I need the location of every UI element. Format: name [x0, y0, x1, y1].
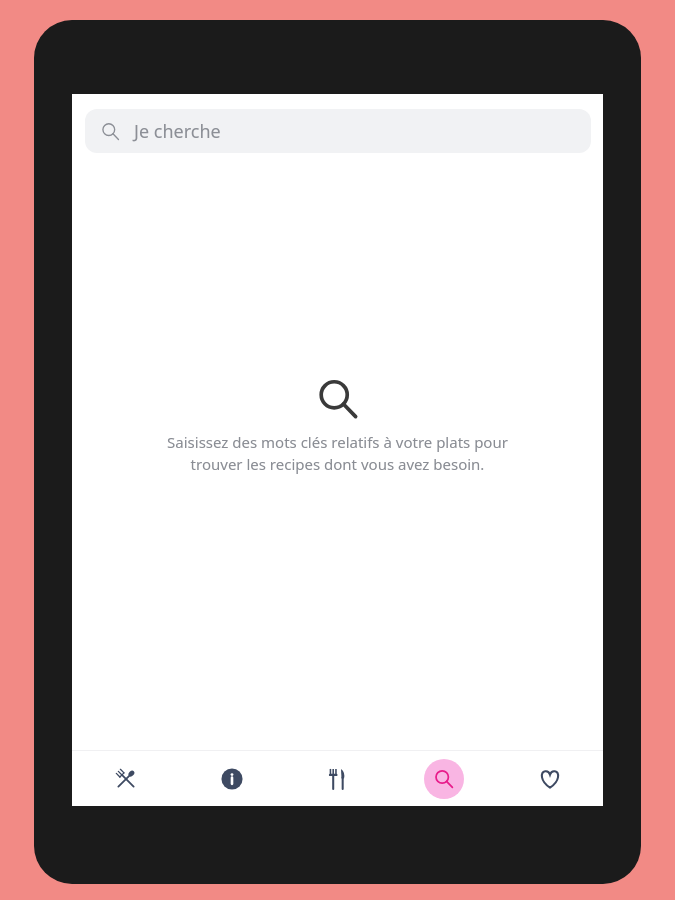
button[interactable]: Meals [285, 751, 391, 806]
button[interactable]: Information [179, 751, 285, 806]
button[interactable]: Je cherche [85, 109, 591, 153]
staticText: Je cherche [134, 119, 221, 144]
button[interactable]: Recipes [72, 751, 179, 806]
button[interactable]: Favorites [497, 751, 603, 806]
staticText: Saisissez des mots clés relatifs à votre… [88, 432, 587, 475]
button[interactable]: Search [391, 751, 497, 806]
